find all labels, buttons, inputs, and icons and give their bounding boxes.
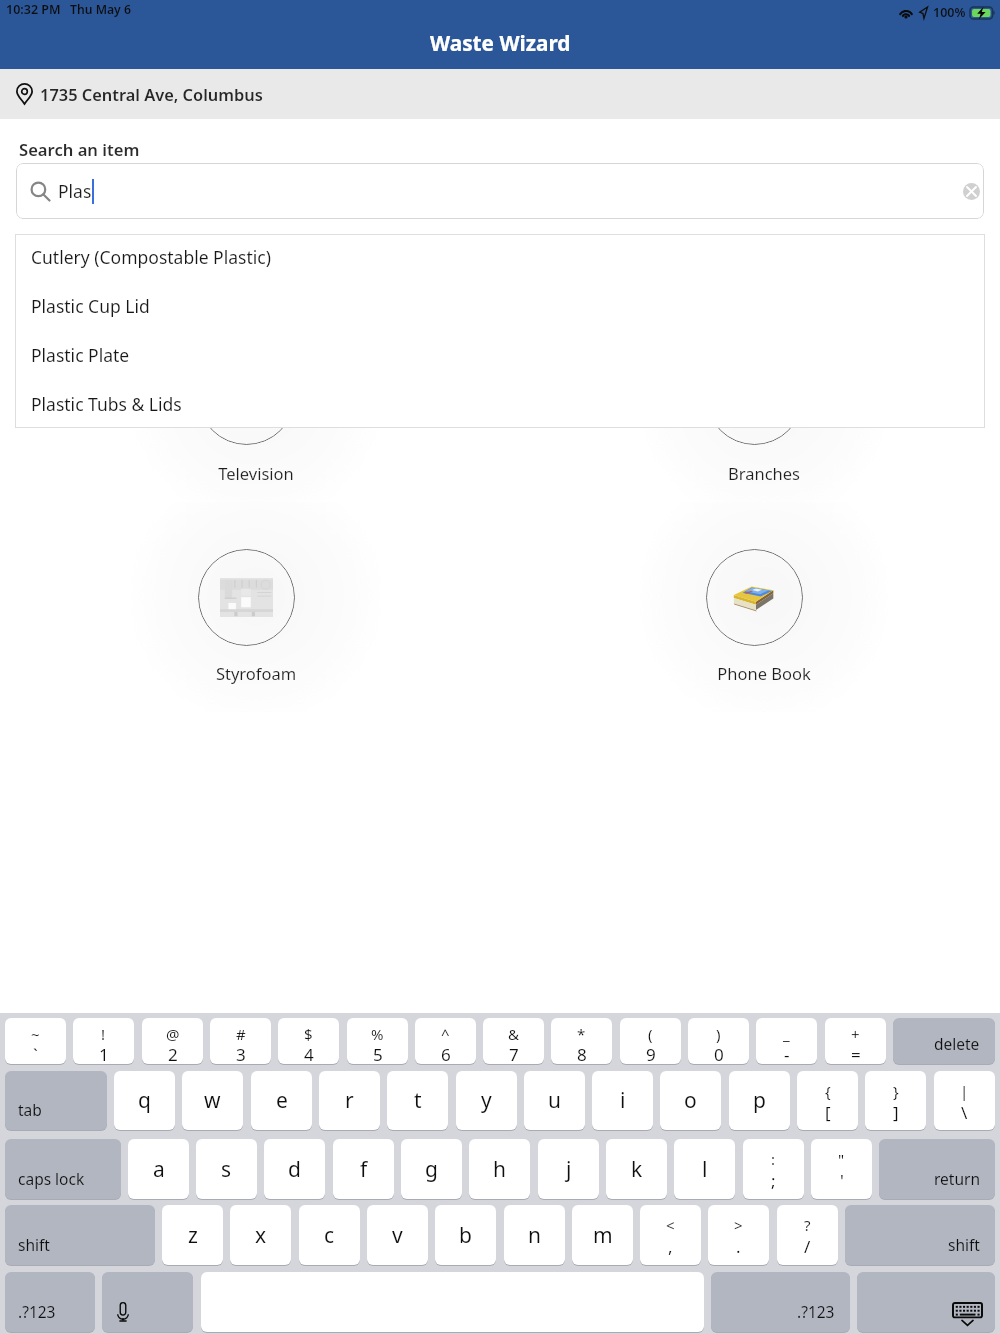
staticText: .?123 (18, 1301, 56, 1322)
button[interactable]: @ (142, 1018, 203, 1064)
button[interactable]: | (934, 1071, 995, 1130)
button[interactable]: Television (146, 462, 366, 484)
button[interactable]: > (708, 1205, 769, 1265)
button[interactable]: Clear text (963, 183, 980, 200)
button[interactable]: a (128, 1139, 189, 1199)
staticText: m (593, 1221, 613, 1250)
button[interactable]: " (811, 1139, 872, 1199)
button[interactable]: v (367, 1205, 428, 1265)
button[interactable] (706, 348, 803, 445)
button[interactable] (706, 549, 803, 646)
button[interactable]: return (879, 1139, 995, 1199)
button[interactable]: z (162, 1205, 223, 1265)
button[interactable]: h (469, 1139, 530, 1199)
staticText: [ (825, 1101, 831, 1124)
staticText: ? (804, 1215, 811, 1235)
button[interactable] (198, 549, 295, 646)
staticText: - (784, 1043, 790, 1064)
button[interactable]: Phone Book (654, 662, 874, 684)
button[interactable]: ) (688, 1018, 749, 1064)
button[interactable]: ( (620, 1018, 681, 1064)
staticText: ; (771, 1169, 776, 1192)
button[interactable]: o (660, 1071, 721, 1130)
button[interactable]: < (640, 1205, 701, 1265)
staticText: 4 (304, 1043, 314, 1064)
staticText: Phone Book (654, 662, 874, 684)
button[interactable]: e (251, 1071, 312, 1130)
button[interactable]: r (319, 1071, 380, 1130)
staticText: ~ (31, 1024, 40, 1044)
staticText: # (236, 1024, 246, 1044)
staticText: caps lock (18, 1168, 85, 1189)
button[interactable]: Plastic Cup Lid (15, 282, 985, 330)
button[interactable]: shift (845, 1205, 995, 1265)
button[interactable]: + (825, 1018, 886, 1064)
staticText: + (851, 1024, 860, 1044)
button[interactable]: Cutlery (Compostable Plastic) (15, 233, 985, 281)
button[interactable]: # (210, 1018, 271, 1064)
button[interactable]: ! (73, 1018, 134, 1064)
button[interactable]: q (114, 1071, 175, 1130)
staticText: _ (783, 1024, 790, 1044)
button[interactable]: m (572, 1205, 633, 1265)
button[interactable]: i (592, 1071, 653, 1130)
button[interactable]: y (456, 1071, 517, 1130)
button[interactable]: t (387, 1071, 448, 1130)
staticText: Cutlery (Compostable Plastic) (31, 245, 271, 269)
button[interactable]: .?123 (5, 1272, 95, 1332)
button[interactable]: tab (5, 1071, 107, 1130)
button[interactable]: k (606, 1139, 667, 1199)
button[interactable]: Plastic Plate (15, 331, 985, 379)
button[interactable]: * (551, 1018, 612, 1064)
button[interactable]: j (538, 1139, 599, 1199)
button[interactable]: : (743, 1139, 804, 1199)
button[interactable]: Styrofoam (146, 662, 366, 684)
button[interactable]: delete (893, 1018, 995, 1064)
staticText: t (414, 1086, 422, 1115)
button[interactable]: .?123 (711, 1272, 850, 1332)
staticText: 100% (933, 4, 966, 21)
button[interactable]: x (230, 1205, 291, 1265)
staticText: delete (934, 1033, 980, 1054)
button[interactable]: & (483, 1018, 544, 1064)
button[interactable]: w (182, 1071, 243, 1130)
button[interactable]: ~ (5, 1018, 66, 1064)
button[interactable]: Dictate (102, 1272, 193, 1332)
button[interactable]: g (401, 1139, 462, 1199)
staticText: z (188, 1221, 198, 1250)
button[interactable]: Plas (16, 163, 984, 219)
button[interactable]: caps lock (5, 1139, 121, 1199)
button[interactable]: _ (756, 1018, 817, 1064)
button[interactable]: Plastic Tubs & Lids (15, 380, 985, 428)
button[interactable]: ? (777, 1205, 838, 1265)
button[interactable]: ^ (415, 1018, 476, 1064)
staticText: 5 (373, 1043, 383, 1064)
staticText: 10:32 PM (6, 1, 61, 18)
button[interactable]: s (196, 1139, 257, 1199)
staticText: Branches (654, 462, 874, 484)
staticText: < (666, 1215, 675, 1235)
staticText: 9 (646, 1043, 656, 1064)
button[interactable] (198, 348, 295, 445)
button[interactable]: % (347, 1018, 408, 1064)
staticText: r (345, 1086, 354, 1115)
button[interactable]: { (797, 1071, 858, 1130)
button[interactable]: l (674, 1139, 735, 1199)
staticText: Plas (58, 179, 92, 203)
button[interactable]: Branches (654, 462, 874, 484)
button[interactable]: $ (278, 1018, 339, 1064)
button[interactable]: n (504, 1205, 565, 1265)
staticText: % (371, 1024, 384, 1044)
button[interactable]: f (333, 1139, 394, 1199)
button[interactable]: p (729, 1071, 790, 1130)
button[interactable]: d (264, 1139, 325, 1199)
staticText: g (425, 1155, 438, 1184)
button[interactable]: c (299, 1205, 360, 1265)
button[interactable]: b (435, 1205, 496, 1265)
button[interactable]: shift (5, 1205, 155, 1265)
button[interactable]: } (865, 1071, 926, 1130)
button[interactable]: u (524, 1071, 585, 1130)
button[interactable]: Hide keyboard (857, 1272, 995, 1332)
staticText: p (753, 1086, 766, 1115)
